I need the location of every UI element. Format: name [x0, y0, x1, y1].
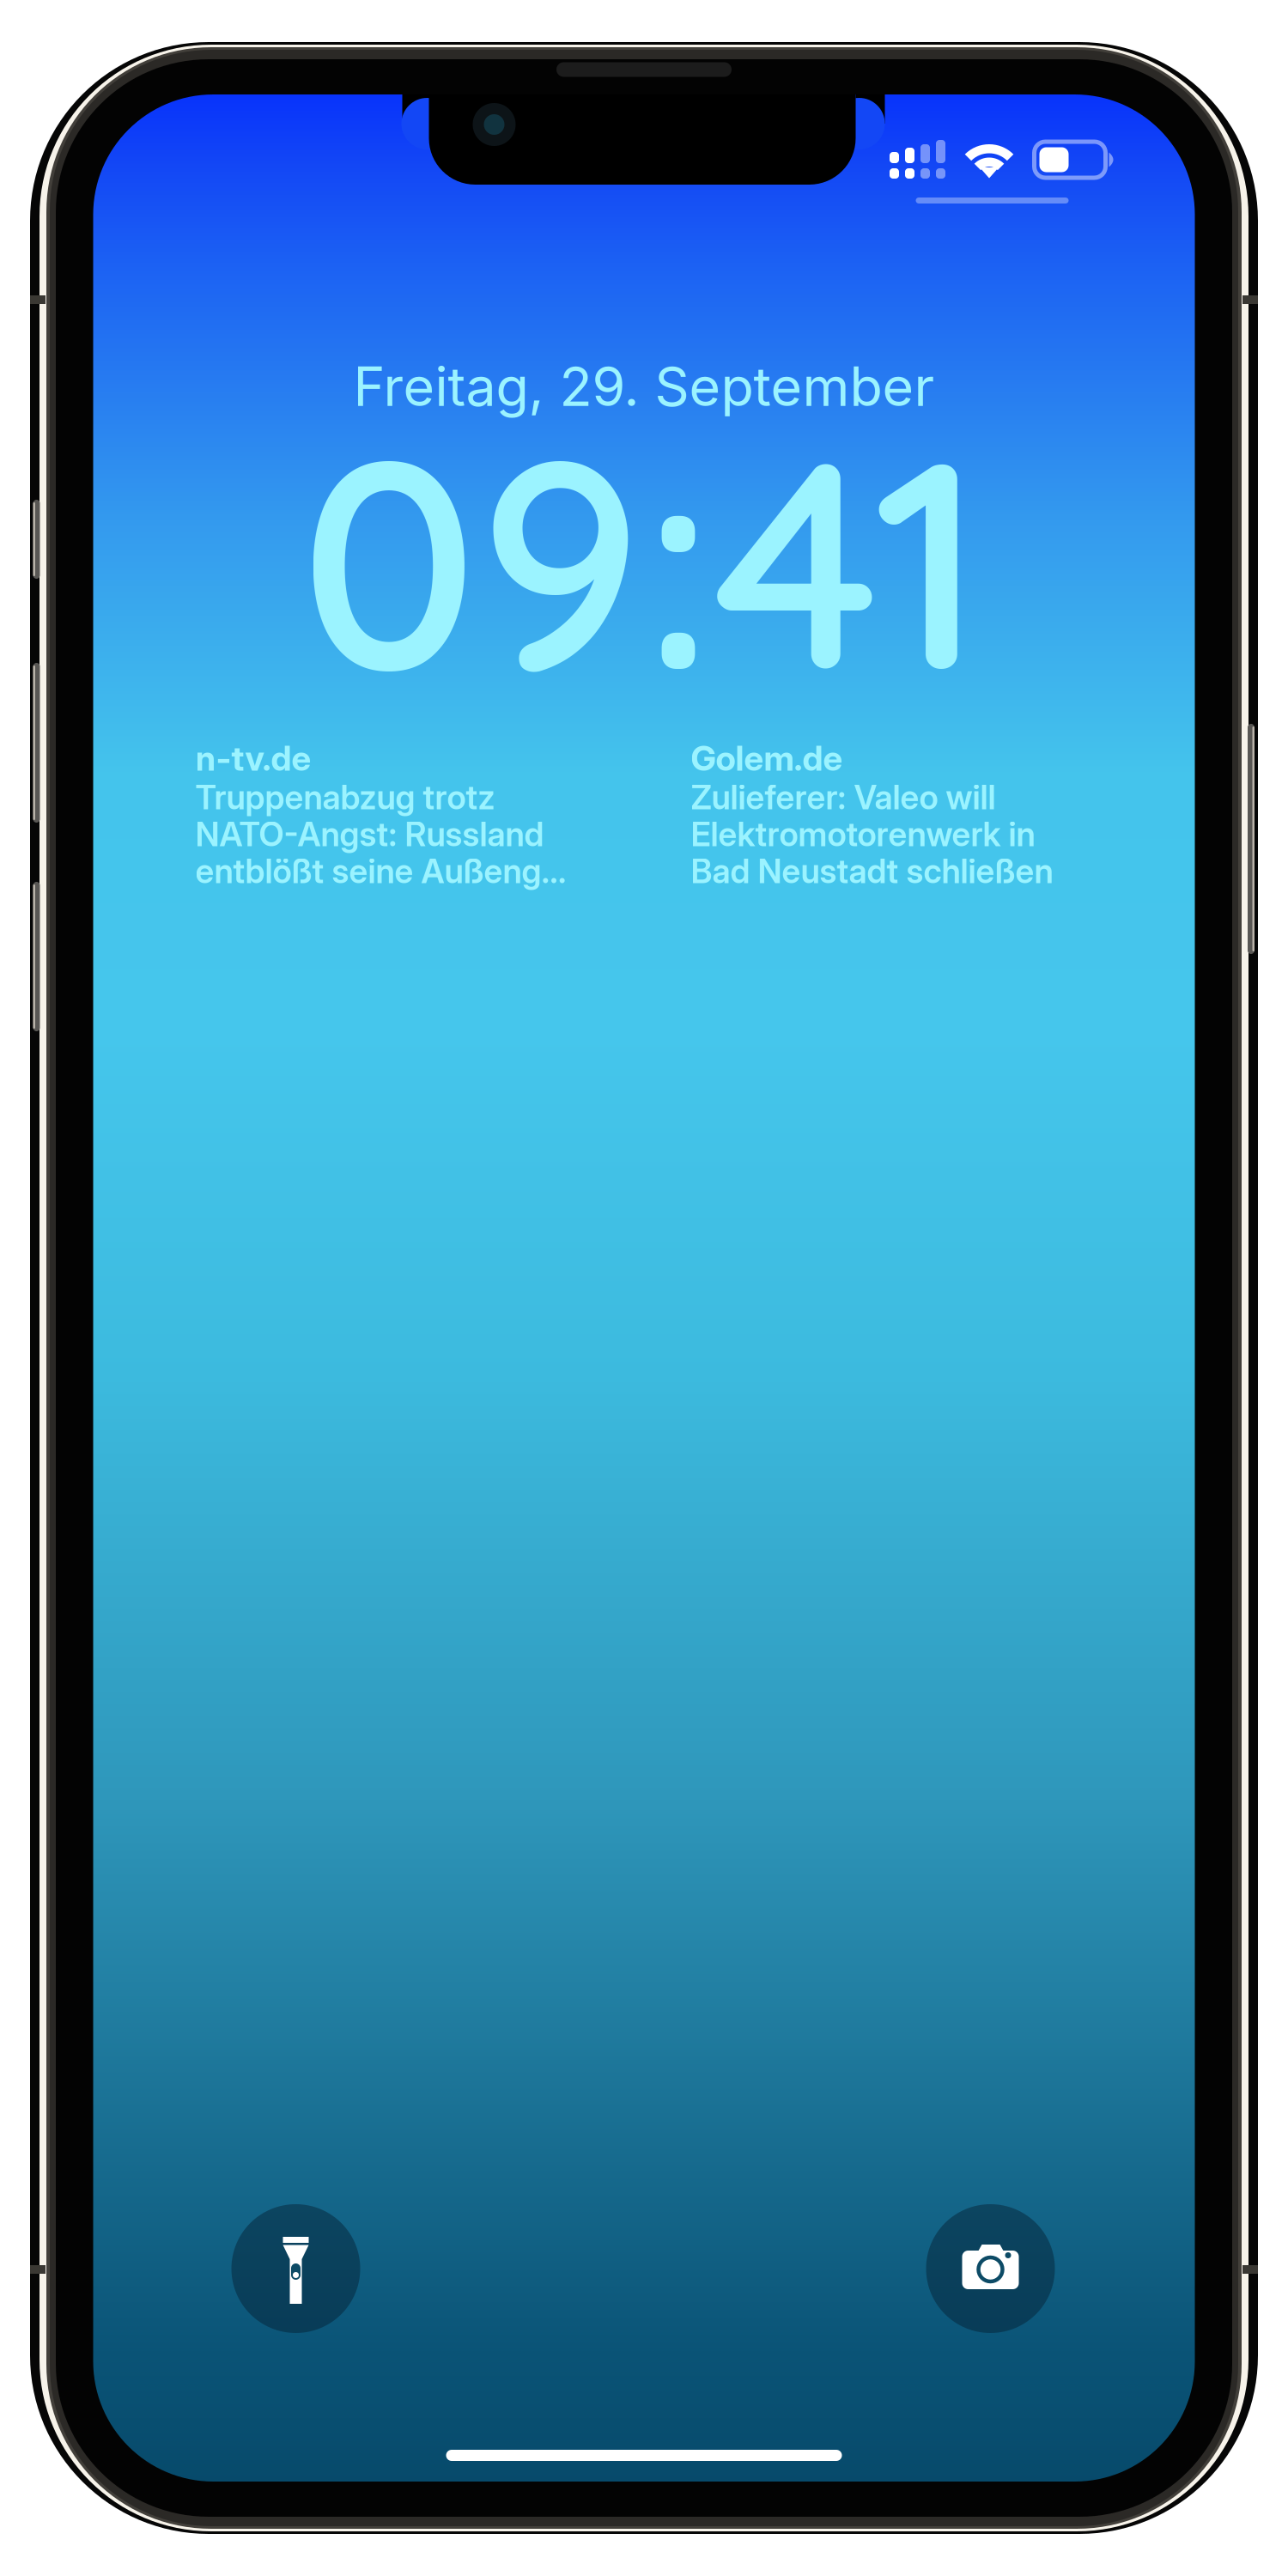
staticText: Freitag, 29. September	[353, 354, 935, 419]
staticText: entblößt seine Außeng…	[195, 851, 566, 891]
staticText: Golem.de	[691, 737, 843, 779]
button[interactable]: Kamera	[926, 2204, 1055, 2333]
staticText: Bad Neustadt schließen	[691, 851, 1053, 891]
button[interactable]: Taschenlampe	[231, 2204, 360, 2333]
button[interactable]: Golem.de	[691, 738, 1094, 890]
staticText: Elektromotorenwerk in	[691, 814, 1035, 854]
staticText: Zulieferer: Valeo will	[691, 777, 996, 817]
button[interactable]: n-tv.de	[195, 738, 599, 890]
staticText: NATO-Angst: Russland	[195, 814, 544, 854]
staticText: n-tv.de	[195, 737, 311, 779]
staticText: Truppenabzug trotz	[195, 777, 495, 817]
staticText: 09:41	[300, 377, 984, 742]
